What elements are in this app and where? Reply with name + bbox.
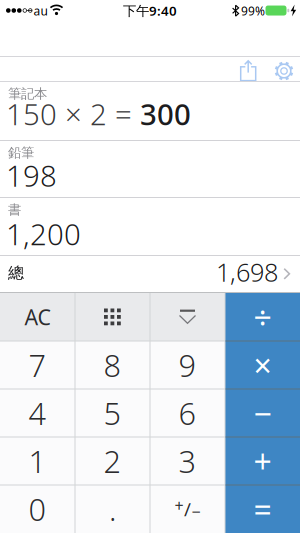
button[interactable]: 鉛筆: [0, 141, 300, 197]
staticText: 300: [140, 94, 191, 133]
staticText: 198: [6, 156, 57, 195]
button[interactable]: 9: [150, 341, 225, 389]
staticText: 1,698: [216, 255, 278, 289]
staticText: 6: [178, 393, 196, 433]
button[interactable]: 4: [0, 389, 75, 437]
button[interactable]: −: [225, 389, 300, 437]
staticText: 8: [103, 345, 121, 385]
button[interactable]: 正負號: [150, 485, 225, 533]
button[interactable]: 收起鍵盤: [150, 293, 225, 341]
staticText: −: [253, 392, 271, 434]
staticText: 3: [178, 441, 196, 481]
staticText: 1: [28, 441, 46, 481]
staticText: −: [191, 501, 200, 522]
button[interactable]: 總: [0, 256, 300, 292]
staticText: 筆記本: [8, 85, 47, 102]
button[interactable]: 0: [0, 485, 75, 533]
staticText: AC: [24, 303, 50, 331]
button[interactable]: 等於: [225, 485, 300, 533]
button[interactable]: AC: [0, 293, 75, 341]
button[interactable]: 5: [75, 389, 150, 437]
staticText: au: [33, 3, 47, 19]
staticText: 2: [103, 441, 121, 481]
staticText: ×: [253, 344, 271, 386]
staticText: 鉛筆: [8, 144, 34, 161]
staticText: 9: [178, 345, 196, 385]
staticText: =: [253, 488, 271, 530]
button[interactable]: 8: [75, 341, 150, 389]
staticText: 書: [8, 201, 21, 218]
staticText: 99%: [241, 3, 265, 19]
button[interactable]: ×: [225, 341, 300, 389]
button[interactable]: +: [225, 437, 300, 485]
button[interactable]: 筆記本: [0, 82, 300, 140]
button[interactable]: 3: [150, 437, 225, 485]
staticText: 下午9:40: [123, 2, 177, 19]
button[interactable]: 2: [75, 437, 150, 485]
button[interactable]: 7: [0, 341, 75, 389]
button[interactable]: 書: [0, 198, 300, 255]
button[interactable]: 1: [0, 437, 75, 485]
staticText: .: [109, 489, 116, 529]
button[interactable]: 除: [225, 293, 300, 341]
staticText: +: [253, 440, 271, 482]
button[interactable]: 6: [150, 389, 225, 437]
staticText: 7: [28, 345, 46, 385]
button[interactable]: 設定: [272, 59, 296, 83]
button[interactable]: 分享: [236, 59, 260, 83]
staticText: 5: [103, 393, 121, 433]
staticText: 4: [28, 393, 46, 433]
staticText: 總: [8, 263, 24, 283]
button[interactable]: .: [75, 485, 150, 533]
staticText: 1,200: [6, 214, 81, 253]
staticText: /: [184, 497, 191, 521]
staticText: 0: [28, 489, 46, 529]
button[interactable]: 鍵盤: [75, 293, 150, 341]
staticText: +: [174, 495, 183, 516]
staticText: ÷: [253, 296, 271, 338]
staticText: 150 × 2 =: [6, 94, 140, 133]
